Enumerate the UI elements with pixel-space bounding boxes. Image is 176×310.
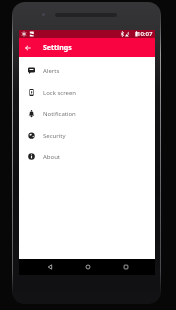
- staticText: Notification: [43, 110, 76, 118]
- staticText: Lock screen: [43, 89, 77, 97]
- staticText: About: [43, 153, 61, 161]
- staticText: 10:07: [137, 30, 153, 38]
- staticText: Alerts: [43, 67, 60, 75]
- staticText: Settings: [43, 43, 72, 53]
- staticText: Security: [43, 132, 66, 140]
- button[interactable]: Home: [79, 259, 97, 275]
- button[interactable]: Notification: [19, 103, 155, 124]
- button[interactable]: Lock screen: [19, 82, 155, 103]
- button[interactable]: About: [19, 146, 155, 167]
- button[interactable]: Back: [41, 259, 59, 275]
- button[interactable]: Recents: [117, 259, 135, 275]
- button[interactable]: Back: [20, 40, 36, 56]
- button[interactable]: Security: [19, 125, 155, 146]
- button[interactable]: Alerts: [19, 60, 155, 81]
